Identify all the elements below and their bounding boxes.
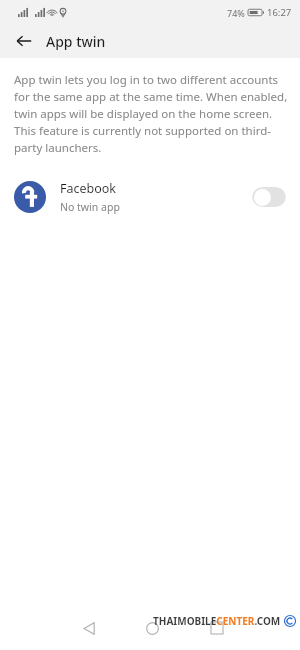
button[interactable]: Toggle twin app xyxy=(252,187,286,207)
staticText: THAIMOBILECENTER.COM xyxy=(153,614,281,628)
button[interactable]: Recents xyxy=(202,613,232,643)
staticText: App twin xyxy=(46,32,106,51)
staticText: Facebook xyxy=(60,180,117,197)
staticText: 16:27 xyxy=(267,6,292,19)
button[interactable]: Back xyxy=(74,613,104,643)
button[interactable]: Facebook xyxy=(0,172,300,222)
button[interactable]: Home xyxy=(137,613,167,643)
staticText: No twin app xyxy=(60,200,120,214)
staticText: 74% xyxy=(227,7,245,19)
staticText: App twin lets you log in to two differen… xyxy=(14,72,288,156)
button[interactable]: Back xyxy=(8,25,40,57)
